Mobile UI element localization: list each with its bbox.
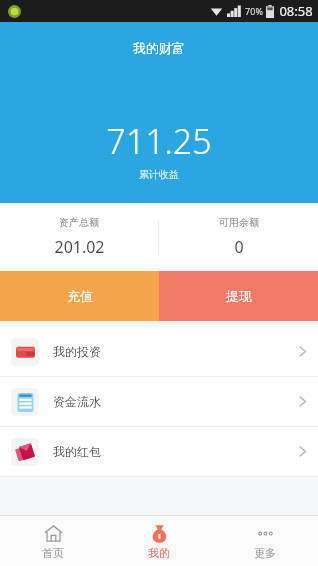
staticText: 我的投资	[53, 344, 101, 359]
staticText: 提现	[226, 288, 252, 304]
staticText: 08:58	[279, 2, 313, 20]
staticText: 充值	[67, 288, 93, 304]
button[interactable]: 提现	[159, 271, 318, 321]
staticText: 70%	[245, 5, 263, 17]
staticText: 更多	[254, 546, 276, 560]
staticText: 可用余额	[219, 216, 259, 229]
staticText: 201.02	[54, 236, 105, 258]
staticText: 我的	[148, 546, 170, 560]
staticText: 0	[234, 236, 244, 258]
button[interactable]: 我的	[106, 516, 212, 566]
button[interactable]: 首页	[0, 516, 106, 566]
button[interactable]: 我的红包	[0, 427, 318, 476]
staticText: 资产总额	[59, 216, 99, 229]
staticText: 我的红包	[53, 444, 101, 459]
staticText: 711.25	[106, 118, 212, 164]
button[interactable]: 资金流水	[0, 377, 318, 426]
button[interactable]: 更多	[212, 516, 318, 566]
staticText: 我的财富	[133, 40, 185, 56]
staticText: 累计收益	[139, 168, 179, 181]
button[interactable]: 充值	[0, 271, 159, 321]
button[interactable]: 我的投资	[0, 327, 318, 376]
staticText: 资金流水	[53, 394, 101, 409]
staticText: 首页	[42, 546, 64, 560]
